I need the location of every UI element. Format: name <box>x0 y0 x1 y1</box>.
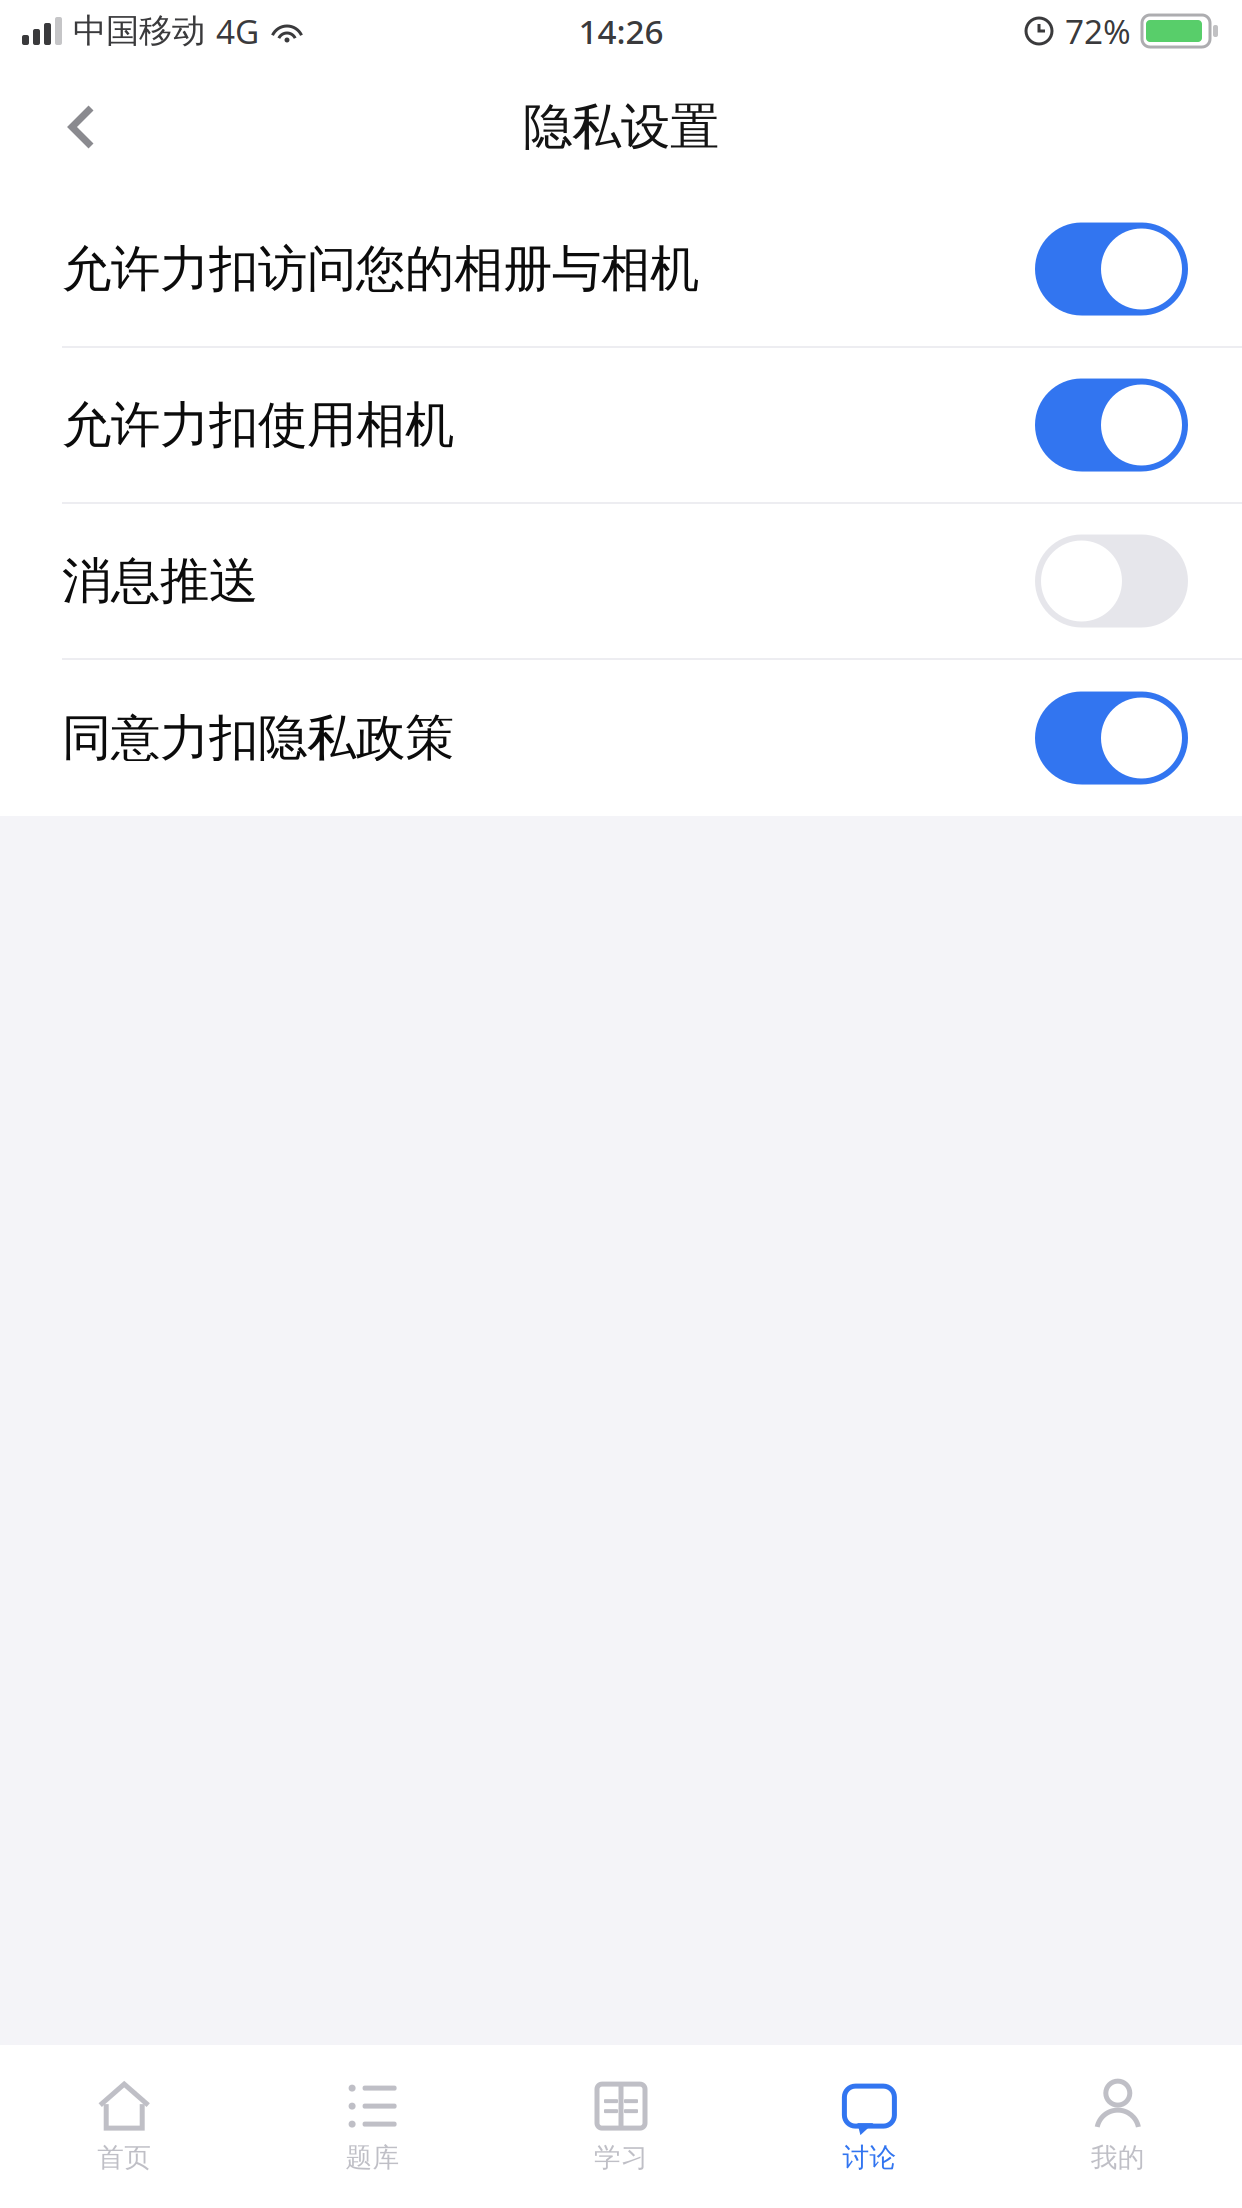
staticText: 消息推送 <box>62 551 258 611</box>
button[interactable]: 题库 <box>248 2045 497 2208</box>
button[interactable]: 我的 <box>994 2045 1242 2208</box>
staticText: 中国移动 <box>73 10 205 51</box>
button[interactable]: 消息推送 <box>0 504 1242 660</box>
staticText: 72% <box>1065 9 1131 53</box>
button[interactable]: 返回 <box>30 75 134 179</box>
button[interactable]: 同意力扣隐私政策 <box>0 660 1242 816</box>
staticText: 我的 <box>1091 2141 1145 2174</box>
staticText: 4G <box>216 9 259 53</box>
staticText: 讨论 <box>842 2141 896 2174</box>
button[interactable]: 学习 <box>497 2045 745 2208</box>
staticText: 允许力扣使用相机 <box>62 395 454 455</box>
button[interactable]: 首页 <box>0 2045 248 2208</box>
staticText: 14:26 <box>578 9 663 53</box>
staticText: 首页 <box>97 2141 151 2174</box>
button[interactable]: 允许力扣访问您的相册与相机 <box>0 192 1242 348</box>
staticText: 同意力扣隐私政策 <box>62 708 454 768</box>
button[interactable]: 讨论 <box>745 2045 994 2208</box>
staticText: 题库 <box>346 2141 400 2174</box>
staticText: 学习 <box>594 2141 648 2174</box>
staticText: 隐私设置 <box>523 97 719 157</box>
button[interactable]: 允许力扣使用相机 <box>0 348 1242 504</box>
staticText: 允许力扣访问您的相册与相机 <box>62 239 699 299</box>
